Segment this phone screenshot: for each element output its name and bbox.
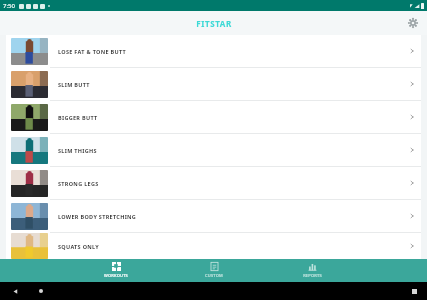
staticText: BIGGER BUTT <box>58 114 98 121</box>
staticText: STRONG LEGS <box>58 180 99 187</box>
button[interactable]: REPORTS <box>286 259 338 282</box>
button[interactable]: STRONG LEGS <box>6 167 421 199</box>
button[interactable]: Settings <box>405 15 421 31</box>
staticText: SLIM THIGHS <box>58 147 97 154</box>
button[interactable]: LOSE FAT & TONE BUTT <box>6 35 421 67</box>
staticText: LOSE FAT & TONE BUTT <box>58 48 127 55</box>
button[interactable]: WORKOUTS <box>90 259 142 282</box>
button[interactable]: BIGGER BUTT <box>6 101 421 133</box>
staticText: LOWER BODY STRETCHING <box>58 213 137 220</box>
button[interactable]: SLIM BUTT <box>6 68 421 100</box>
button[interactable]: SLIM THIGHS <box>6 134 421 166</box>
staticText: 7:50 <box>3 2 15 10</box>
staticText: WORKOUTS <box>104 273 128 278</box>
staticText: SLIM BUTT <box>58 81 90 88</box>
staticText: FITSTAR <box>196 18 232 29</box>
button[interactable]: SQUATS ONLY <box>6 233 421 259</box>
button[interactable]: LOWER BODY STRETCHING <box>6 200 421 232</box>
staticText: SQUATS ONLY <box>58 243 100 250</box>
button[interactable]: Back <box>12 288 19 295</box>
button[interactable]: CUSTOM <box>188 259 240 282</box>
staticText: CUSTOM <box>205 273 223 278</box>
staticText: REPORTS <box>303 273 322 278</box>
button[interactable]: Home <box>38 288 44 294</box>
